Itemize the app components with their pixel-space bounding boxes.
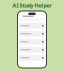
staticText: AI Study Helper [12,2,51,9]
button[interactable] [19,47,45,53]
button[interactable] [19,31,45,37]
button[interactable] [19,55,45,61]
button[interactable] [19,23,45,29]
button[interactable] [19,39,45,45]
